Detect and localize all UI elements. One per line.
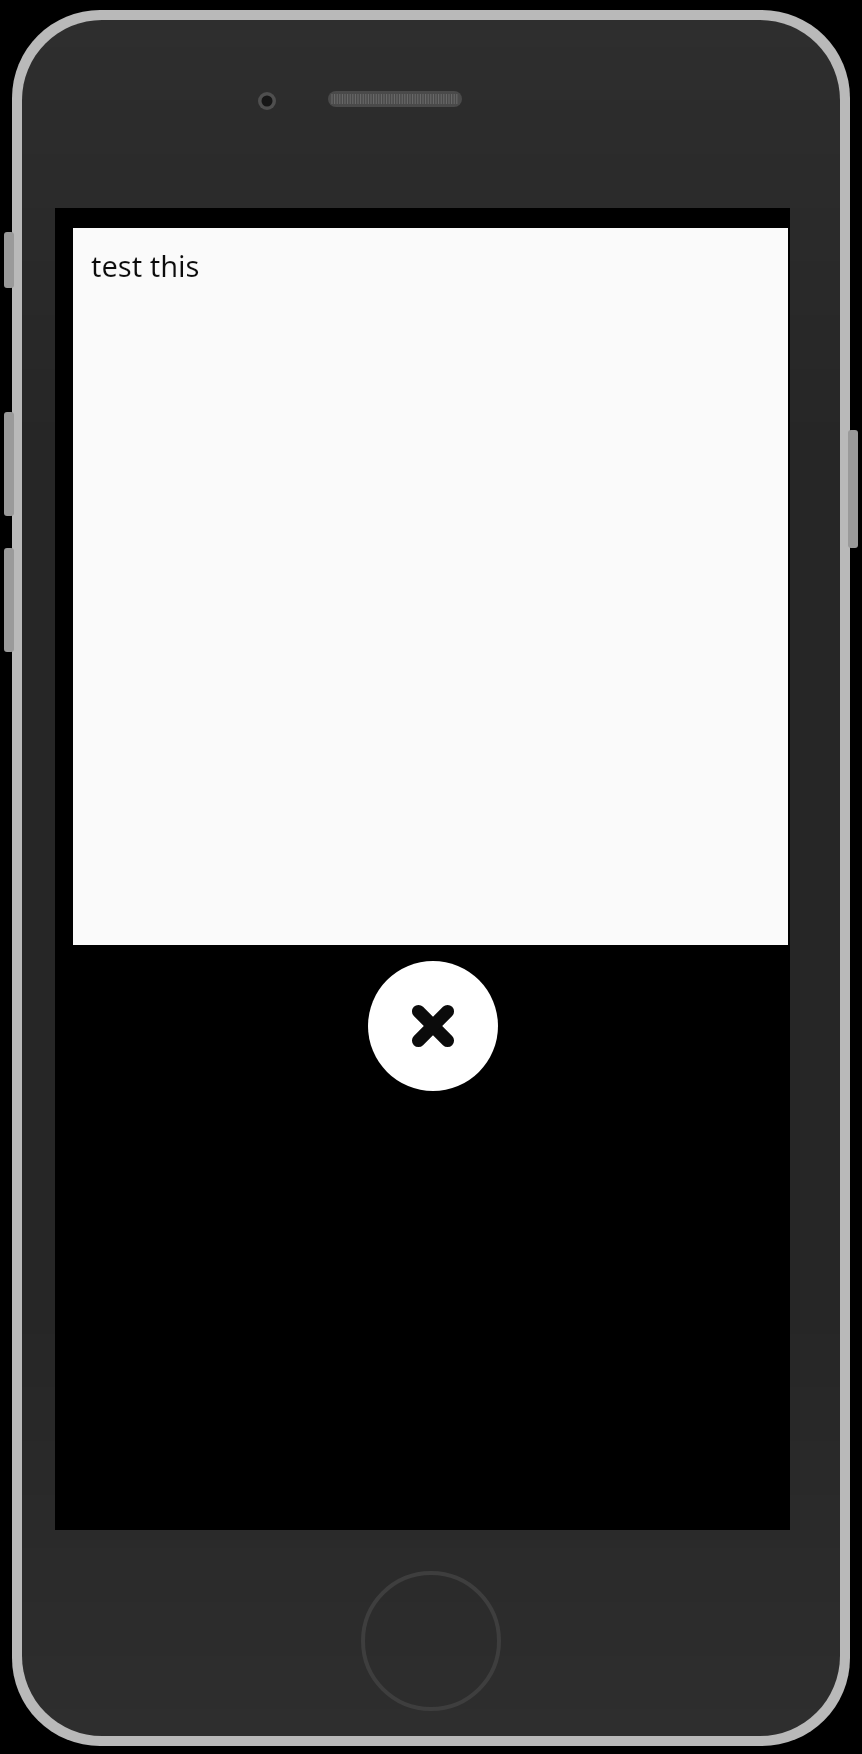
button[interactable]: test this bbox=[91, 246, 200, 285]
button[interactable]: Close bbox=[368, 961, 498, 1091]
